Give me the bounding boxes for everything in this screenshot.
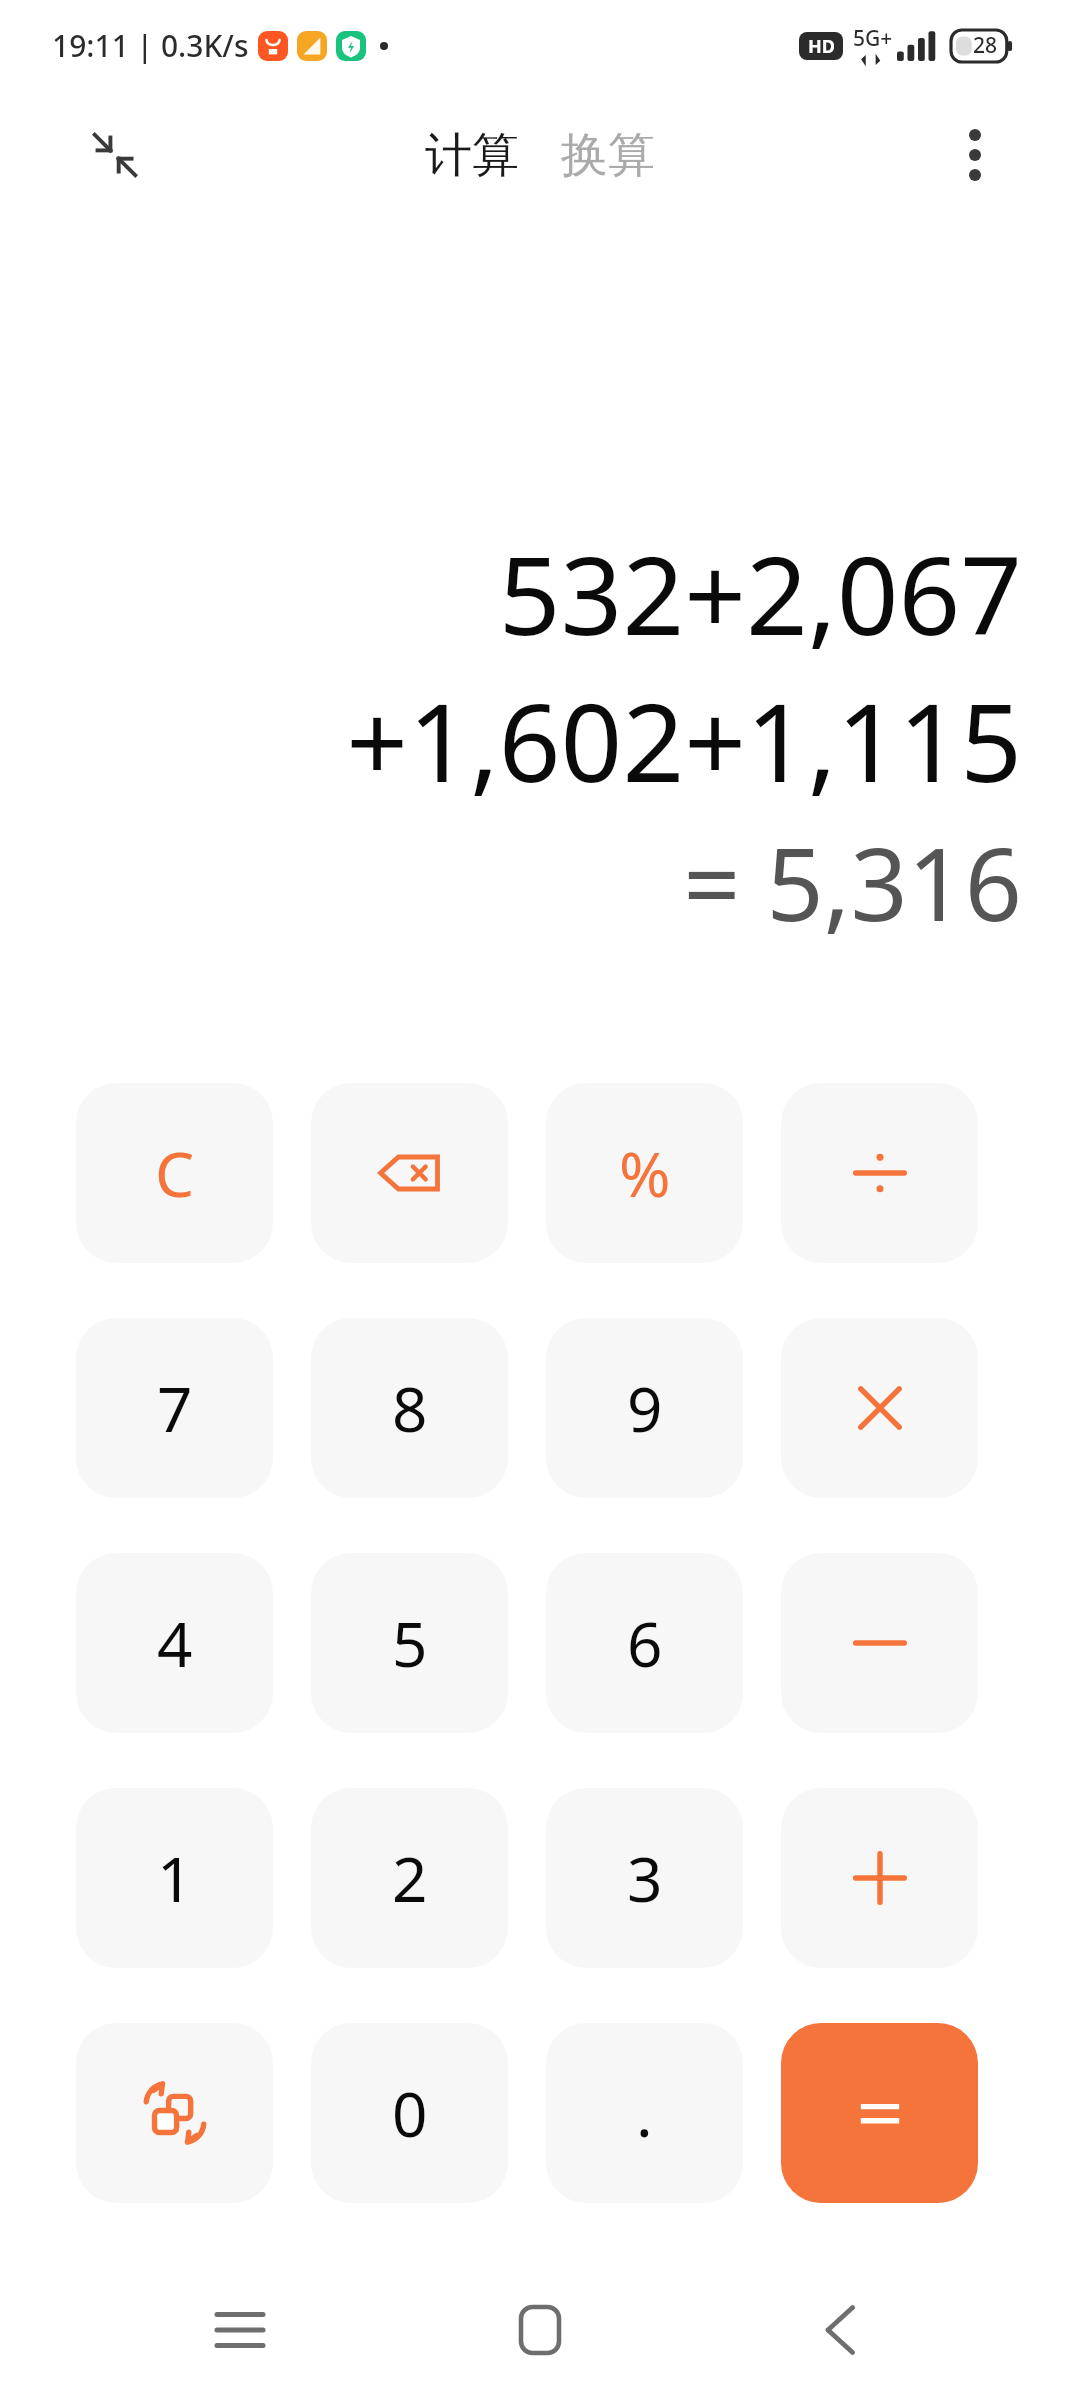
button[interactable]: Multiply (781, 1318, 978, 1498)
button[interactable]: 3 (546, 1788, 743, 1968)
button[interactable]: % (546, 1083, 743, 1263)
button[interactable]: Convert (76, 2023, 273, 2203)
button[interactable]: C (76, 1083, 273, 1263)
button[interactable]: Backspace (311, 1083, 508, 1263)
button[interactable]: 5 (311, 1553, 508, 1733)
staticText: +1,602+1,115 (346, 667, 1022, 814)
button[interactable]: . (546, 2023, 743, 2203)
staticText: 5G+ (853, 24, 893, 53)
button[interactable]: Collapse (76, 116, 154, 194)
staticText: 532+2,067 (498, 520, 1022, 667)
staticText: 19:11 | 0.3K/s (52, 25, 249, 66)
staticText: 2 (392, 1836, 428, 1920)
button[interactable]: Plus (781, 1788, 978, 1968)
staticText: = 5,316 (683, 814, 1022, 950)
staticText: C (155, 1131, 195, 1215)
staticText: 28 (973, 31, 998, 60)
button[interactable]: Home (480, 2270, 600, 2390)
button[interactable]: Divide (781, 1083, 978, 1263)
staticText: 换算 (561, 126, 655, 185)
staticText: % (619, 1131, 671, 1215)
staticText: 6 (627, 1601, 663, 1685)
button[interactable]: 8 (311, 1318, 508, 1498)
button[interactable]: Equals (781, 2023, 978, 2203)
staticText: 4 (157, 1601, 193, 1685)
button[interactable]: 换算 (551, 118, 665, 193)
staticText: 3 (627, 1836, 663, 1920)
button[interactable]: 0 (311, 2023, 508, 2203)
button[interactable]: Back (780, 2270, 900, 2390)
staticText: 计算 (425, 126, 519, 185)
button[interactable]: 6 (546, 1553, 743, 1733)
button[interactable]: More options (936, 116, 1014, 194)
button[interactable]: 4 (76, 1553, 273, 1733)
staticText: 7 (157, 1366, 193, 1450)
staticText: 0 (392, 2071, 428, 2155)
staticText: HD (808, 34, 835, 59)
staticText: 9 (627, 1366, 663, 1450)
staticText: 1 (157, 1836, 193, 1920)
staticText: 5 (392, 1601, 428, 1685)
button[interactable]: 2 (311, 1788, 508, 1968)
staticText: 8 (392, 1366, 428, 1450)
button[interactable]: Recents (180, 2270, 300, 2390)
button[interactable]: 1 (76, 1788, 273, 1968)
button[interactable]: Minus (781, 1553, 978, 1733)
button[interactable]: 7 (76, 1318, 273, 1498)
button[interactable]: 9 (546, 1318, 743, 1498)
button[interactable]: 计算 (415, 118, 529, 193)
staticText: . (636, 2071, 653, 2155)
